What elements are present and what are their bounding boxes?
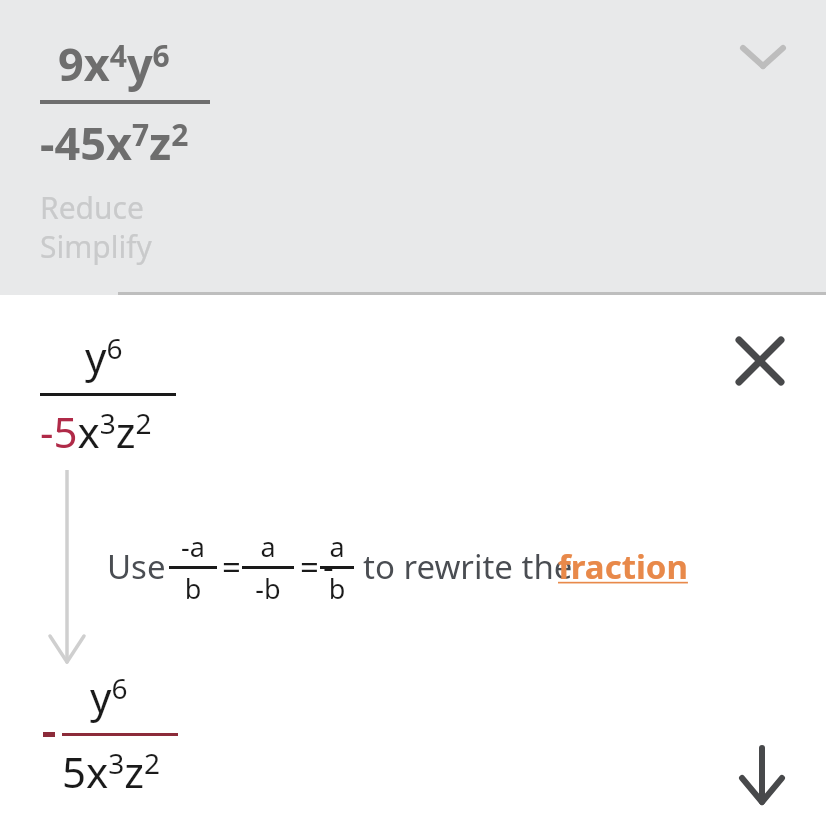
staticText: y6 [90, 668, 128, 725]
button[interactable]: fraction [556, 538, 686, 586]
staticText: -45x7z2 [40, 112, 189, 173]
staticText: 9x4y6 [58, 33, 170, 94]
staticText: Simplify [40, 226, 152, 267]
staticText: = [300, 544, 319, 589]
staticText: -5x3z2 [40, 403, 152, 460]
staticText: - [323, 544, 334, 589]
button[interactable] [0, 0, 826, 295]
button[interactable]: Next step [727, 740, 797, 810]
staticText: y6 [85, 328, 123, 385]
staticText: b [320, 570, 354, 610]
staticText: a [242, 528, 294, 564]
button[interactable]: Close [725, 326, 795, 396]
staticText: -a [169, 528, 217, 564]
staticText: = [222, 544, 241, 589]
staticText: Use [107, 544, 166, 589]
button[interactable]: Collapse [728, 22, 798, 92]
staticText: b [169, 570, 217, 610]
staticText: fraction [558, 544, 688, 589]
staticText: 5x3z2 [62, 743, 161, 800]
staticText: to rewrite the [363, 544, 573, 589]
staticText: a [320, 528, 354, 564]
staticText: Reduce [40, 187, 144, 228]
staticText: -b [242, 570, 294, 610]
